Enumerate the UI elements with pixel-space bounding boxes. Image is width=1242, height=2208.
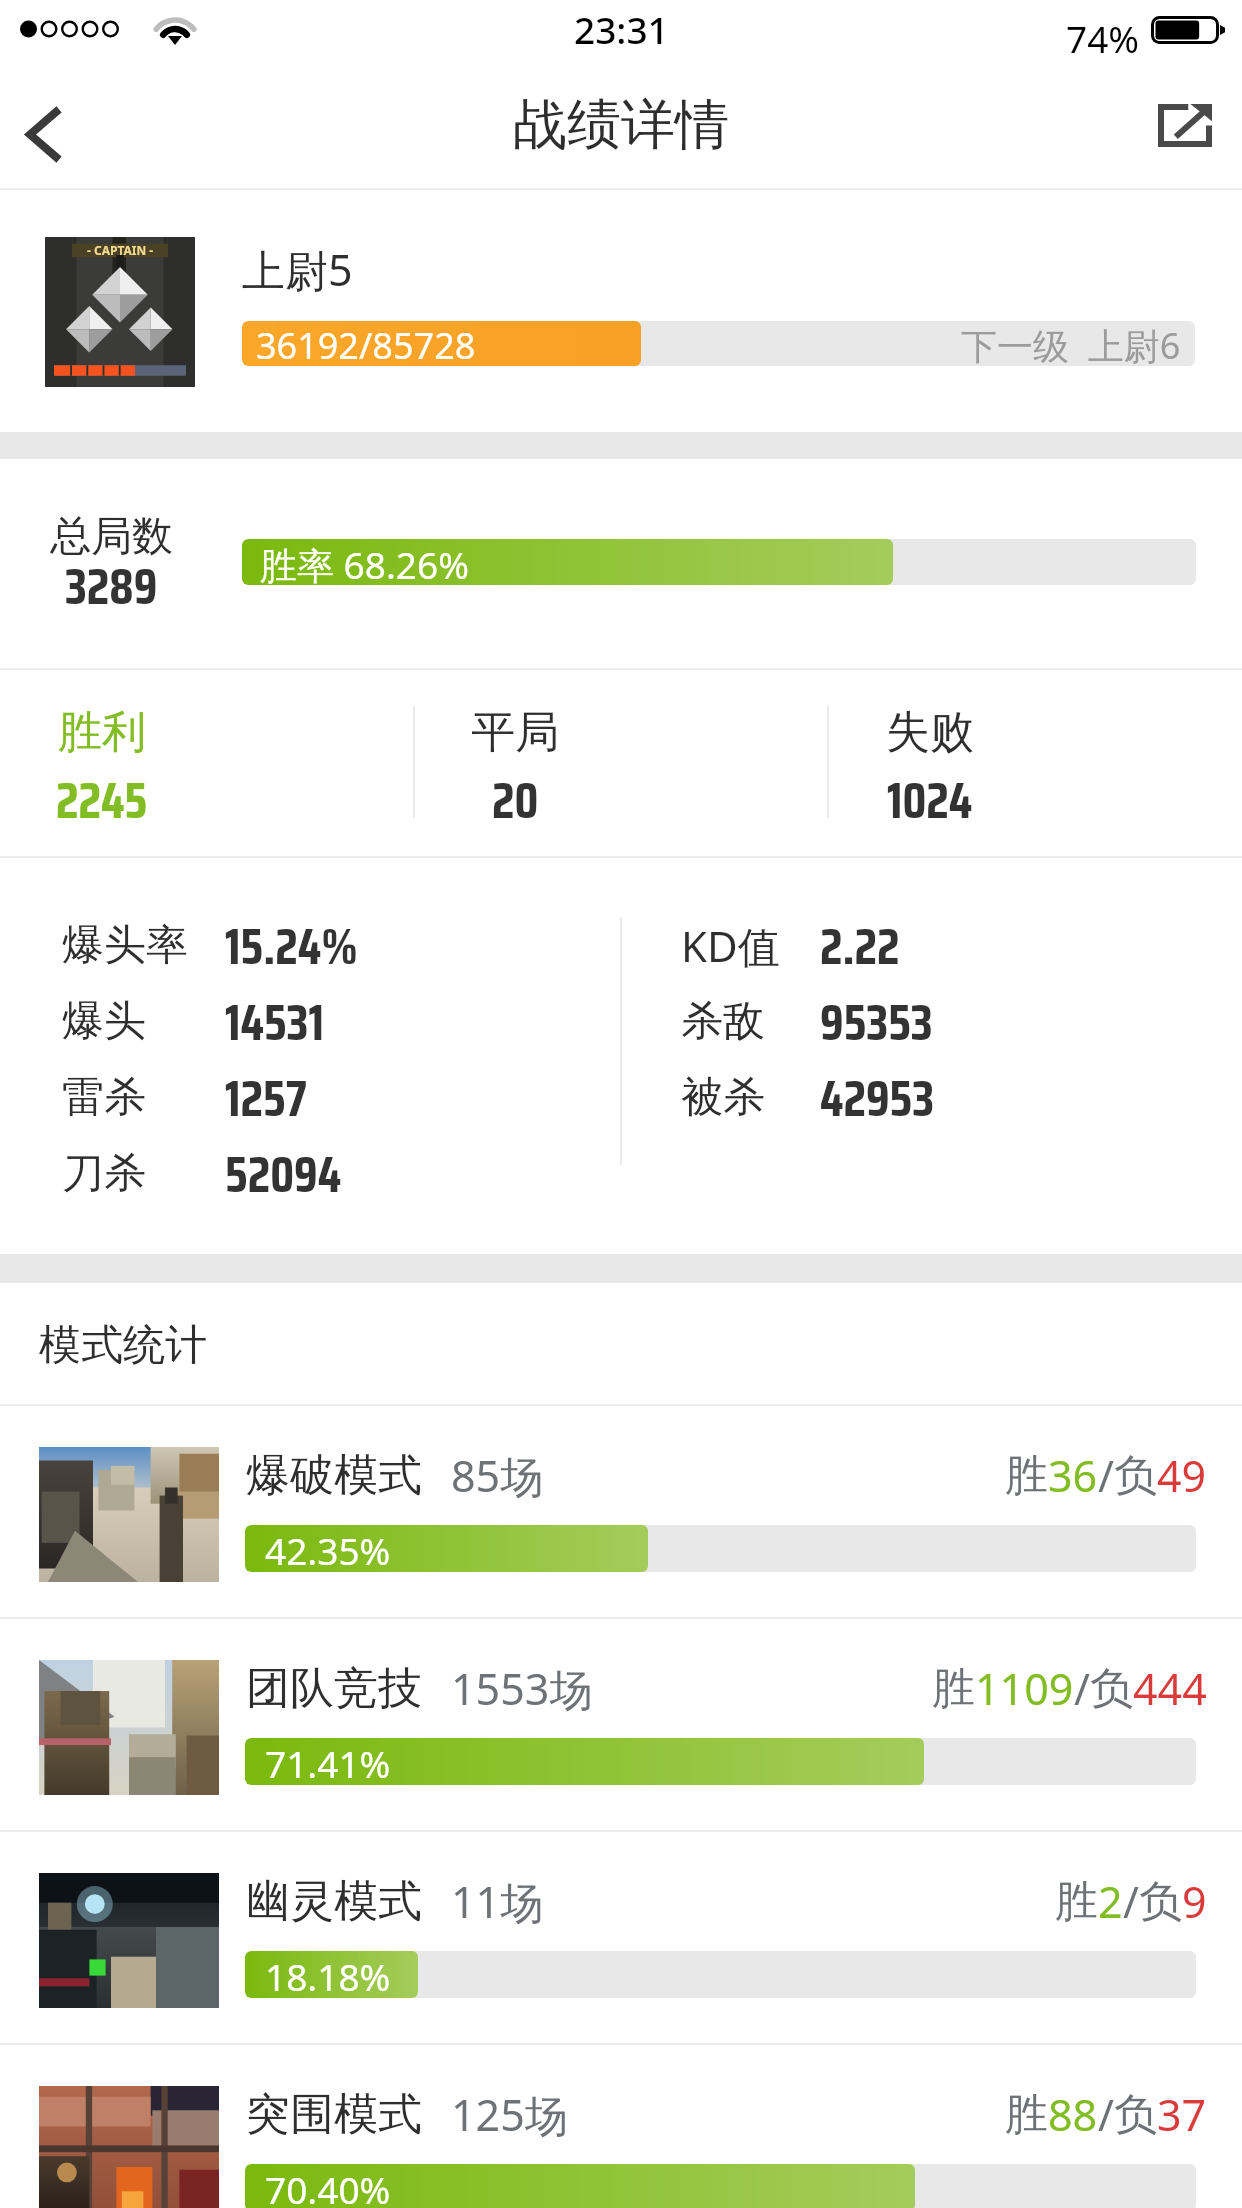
staticText: 88 [1048,2085,1098,2144]
staticText: 平局 [471,705,559,760]
staticText: 37 [1157,2085,1207,2144]
staticText: 20 [492,761,539,840]
staticText: / [1098,2085,1114,2144]
staticText: 1024 [887,761,973,840]
staticText: 爆头率 [62,919,188,972]
button[interactable]: 胜利 [2,670,202,856]
staticText: 36 [1048,1446,1098,1505]
button[interactable]: Back [0,70,90,180]
staticText: 2 [1098,1872,1123,1931]
staticText: 被杀 [681,1071,765,1124]
staticText: 战绩详情 [513,91,729,159]
staticText: 2245 [56,761,148,840]
staticText: 444 [1133,1659,1207,1718]
staticText: 95353 [820,983,933,1059]
staticText: 胜 [1055,1875,1098,1929]
staticText: 负 [1114,2088,1157,2142]
staticText: 负 [1114,1449,1157,1503]
staticText: 杀敌 [681,995,765,1048]
staticText: KD值 [681,917,780,974]
staticText: 突围模式 [246,2087,422,2142]
staticText: 下一级 上尉6 [961,321,1181,366]
button[interactable]: 失败 [690,670,1170,856]
staticText: 15.24% [225,907,358,983]
staticText: / [1098,1446,1114,1505]
staticText: 2.22 [820,907,900,983]
staticText: 负 [1090,1662,1133,1716]
staticText: 1257 [225,1059,307,1135]
staticText: 胜 [1005,2088,1048,2142]
staticText: 42.35% [265,1525,391,1572]
staticText: 49 [1157,1446,1207,1505]
staticText: 71.41% [265,1738,391,1785]
staticText: 总局数 [50,511,173,563]
staticText: 胜率 68.26% [260,539,469,585]
staticText: - CAPTAIN - [87,242,154,258]
staticText: 团队竞技 [246,1661,422,1716]
staticText: 3289 [65,547,158,626]
staticText: 85场 [451,1446,544,1505]
staticText: / [1074,1659,1090,1718]
staticText: 爆破模式 [246,1448,422,1503]
staticText: 失败 [886,705,974,760]
staticText: 1109 [975,1659,1074,1718]
staticText: 9 [1182,1872,1207,1931]
staticText: 18.18% [265,1951,391,1998]
staticText: 刀杀 [62,1147,146,1200]
staticText: 1553场 [451,1659,593,1718]
staticText: 胜 [932,1662,975,1716]
staticText: 42953 [820,1059,935,1135]
staticText: 上尉5 [242,240,353,299]
staticText: / [1123,1872,1139,1931]
button[interactable]: 幽灵模式 [0,1832,1242,2043]
staticText: 36192/85728 [256,321,476,366]
staticText: 胜利 [58,705,146,760]
staticText: 70.40% [265,2164,391,2208]
button[interactable]: 团队竞技 [0,1619,1242,1830]
staticText: 模式统计 [39,1319,207,1372]
staticText: 负 [1139,1875,1182,1929]
button[interactable]: Share [1130,70,1242,180]
staticText: 125场 [451,2085,568,2144]
staticText: 雷杀 [62,1071,146,1124]
button[interactable]: 突围模式 [0,2045,1242,2208]
staticText: 幽灵模式 [246,1874,422,1929]
staticText: 52094 [225,1135,342,1211]
staticText: 爆头 [62,995,146,1048]
staticText: 11场 [451,1872,544,1931]
staticText: 14531 [225,983,324,1059]
staticText: 74% [1066,13,1140,63]
staticText: 胜 [1005,1449,1048,1503]
staticText: 23:31 [574,4,669,54]
button[interactable]: 爆破模式 [0,1406,1242,1617]
button[interactable]: 平局 [275,670,755,856]
